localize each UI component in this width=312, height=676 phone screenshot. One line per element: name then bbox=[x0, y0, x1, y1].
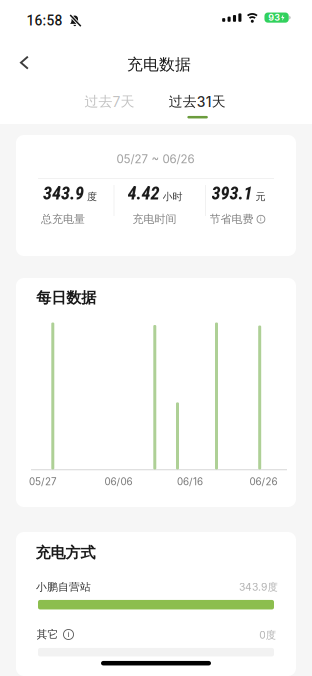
staticText: 过去7天 bbox=[85, 93, 135, 110]
button[interactable]: i bbox=[257, 215, 265, 223]
staticText: 393.1 bbox=[211, 183, 252, 204]
staticText: 06/06 bbox=[104, 476, 132, 488]
staticText: i bbox=[260, 215, 262, 223]
staticText: 小时 bbox=[162, 190, 182, 203]
staticText: 充电数据 bbox=[127, 54, 191, 74]
staticText: 05/27 ~ 06/26 bbox=[116, 152, 194, 166]
staticText: 06/26 bbox=[249, 476, 277, 488]
staticText: 其它 bbox=[36, 628, 58, 641]
staticText: 0 bbox=[259, 629, 265, 641]
staticText: 度 bbox=[87, 190, 97, 203]
staticText: i bbox=[67, 630, 69, 639]
staticText: 4.42 bbox=[127, 183, 159, 204]
staticText: 度 bbox=[268, 580, 278, 593]
staticText: 343.9 bbox=[43, 183, 84, 204]
button[interactable]: 过去31天 bbox=[169, 89, 226, 114]
button[interactable]: i bbox=[63, 629, 73, 639]
staticText: 充电时间 bbox=[132, 212, 176, 226]
staticText: 度 bbox=[266, 628, 276, 641]
staticText: 06/16 bbox=[177, 476, 203, 488]
staticText: 每日数据 bbox=[36, 288, 96, 307]
staticText: 93 bbox=[268, 12, 280, 23]
staticText: 总充电量 bbox=[41, 212, 85, 226]
staticText: 节省电费 bbox=[209, 212, 253, 226]
staticText: 小鹏自营站 bbox=[36, 580, 91, 594]
staticText: 05/27 bbox=[29, 476, 57, 488]
staticText: 16:58 bbox=[26, 13, 62, 29]
staticText: 343.9 bbox=[239, 581, 267, 593]
staticText: 过去31天 bbox=[169, 93, 226, 110]
button[interactable]: 过去7天 bbox=[85, 89, 135, 114]
staticText: 元 bbox=[255, 190, 265, 203]
staticText: 充电方式 bbox=[35, 543, 95, 562]
button[interactable] bbox=[12, 50, 37, 75]
